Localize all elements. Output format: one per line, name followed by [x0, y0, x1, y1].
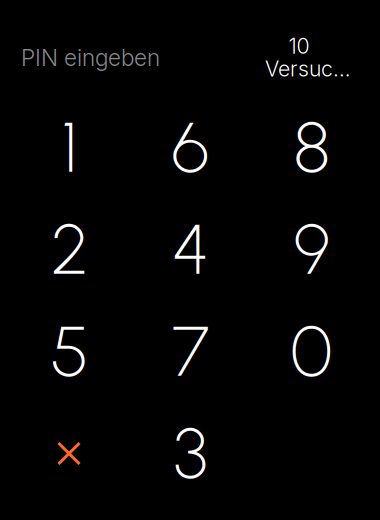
button[interactable]: 2	[9, 198, 130, 300]
staticText: 9	[293, 207, 329, 291]
staticText: 5	[50, 309, 88, 393]
button[interactable]: 4	[130, 198, 251, 300]
staticText: 10	[288, 33, 309, 59]
staticText: 1	[61, 105, 77, 189]
button[interactable]: 8	[251, 96, 372, 198]
button[interactable]: 7	[130, 300, 251, 402]
button[interactable]: 5	[9, 300, 130, 402]
staticText: 6	[171, 105, 209, 189]
button[interactable]: 9	[251, 198, 372, 300]
staticText: PIN eingeben	[21, 44, 160, 71]
staticText: 7	[172, 309, 209, 393]
staticText: Versuc…	[265, 56, 351, 82]
staticText: 3	[173, 411, 207, 495]
staticText: 0	[290, 309, 332, 393]
button[interactable]: Abbrechen	[9, 402, 130, 504]
button[interactable]: 3	[130, 402, 251, 504]
staticText: 2	[51, 207, 88, 291]
button[interactable]: 6	[130, 96, 251, 198]
button[interactable]: 1	[9, 96, 130, 198]
staticText: 4	[172, 207, 209, 291]
button[interactable]: 0	[251, 300, 372, 402]
staticText: 8	[293, 105, 329, 189]
